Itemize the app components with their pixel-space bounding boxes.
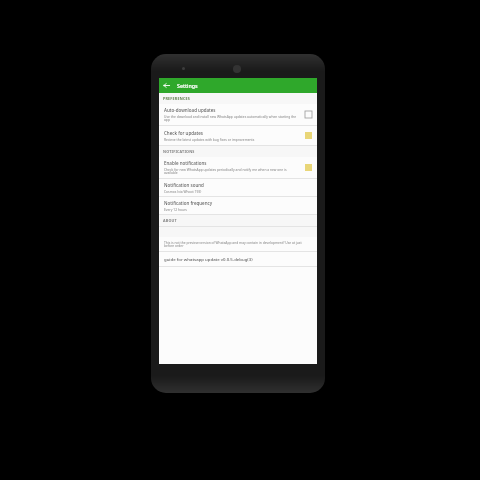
staticText: Recieve the latest updates with bug fixe… <box>164 137 255 141</box>
staticText: ABOUT <box>163 218 177 223</box>
staticText: This is not the preview version of Whats… <box>164 240 312 248</box>
button[interactable]: Back <box>159 78 174 93</box>
staticText: PREFERENCES <box>163 96 191 101</box>
staticText: Notification sound <box>164 182 204 188</box>
button[interactable]: Auto-download updates <box>159 104 317 125</box>
staticText: Use the download and install new WhatsAp… <box>164 114 300 122</box>
staticText: NOTIFICATIONS <box>163 149 195 154</box>
button[interactable]: This is not the preview version of Whats… <box>159 237 317 251</box>
button[interactable]: guide for whatsapp update v0.0.5-debug(3… <box>159 252 317 266</box>
staticText: Every 12 hours <box>164 207 187 211</box>
staticText: Check for updates <box>164 130 204 136</box>
button[interactable]: Notification sound <box>159 179 317 196</box>
staticText: Check for new WhatsApp updates periodica… <box>164 167 300 175</box>
staticText: guide for whatsapp update v0.0.5-debug(3… <box>164 256 253 262</box>
staticText: Settings <box>177 82 198 89</box>
staticText: Enable notifications <box>164 160 207 166</box>
staticText: Notification frequency <box>164 200 213 206</box>
button[interactable]: Enabled <box>302 161 315 174</box>
staticText: Cosmos (via Whoot 193) <box>164 189 202 193</box>
button[interactable]: Enable notifications <box>159 157 317 178</box>
button[interactable]: Check for updates <box>159 126 317 145</box>
button[interactable]: Notification frequency <box>159 197 317 214</box>
button[interactable]: Disabled <box>302 108 315 121</box>
button[interactable]: Enabled <box>302 129 315 142</box>
staticText: Auto-download updates <box>164 107 216 113</box>
